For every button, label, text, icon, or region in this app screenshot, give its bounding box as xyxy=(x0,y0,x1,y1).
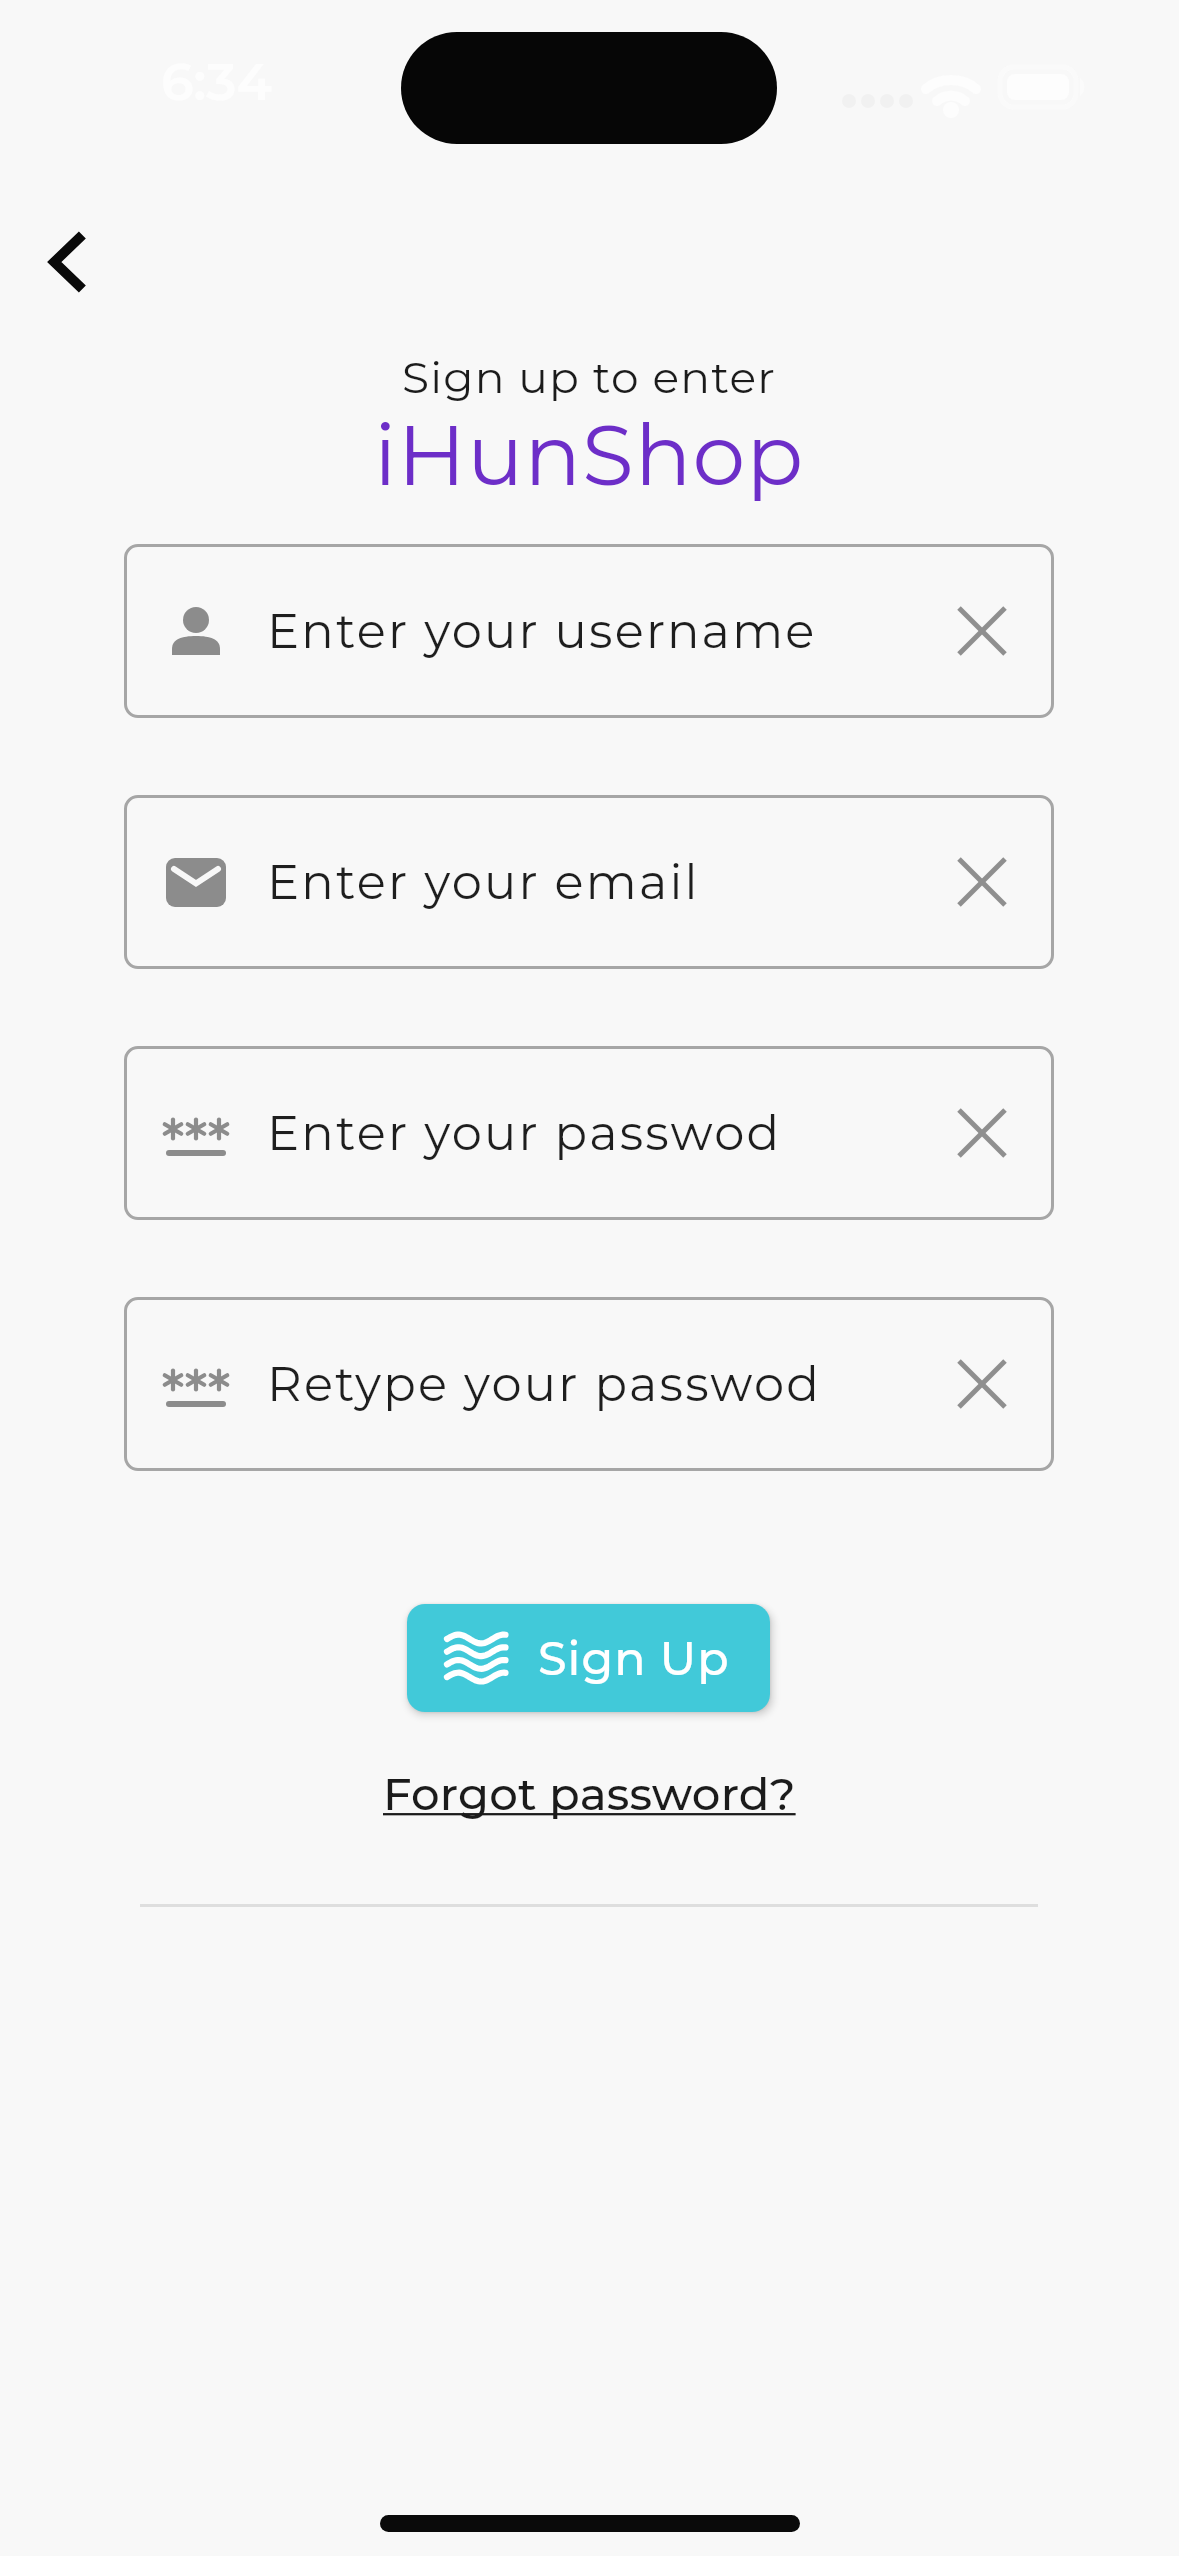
button[interactable] xyxy=(28,210,108,314)
staticText: Enter your email xyxy=(267,853,700,912)
button[interactable]: Retype your passwod xyxy=(124,1297,1054,1471)
button[interactable]: Enter your username xyxy=(124,544,1054,718)
staticText: Enter your passwod xyxy=(267,1104,782,1163)
button[interactable]: Enter your passwod xyxy=(124,1046,1054,1220)
staticText: Sign up to enter xyxy=(402,350,777,404)
button[interactable]: Forgot password? xyxy=(383,1766,796,1821)
staticText: Retype your passwod xyxy=(267,1355,822,1414)
staticText: Enter your username xyxy=(267,602,817,661)
staticText: Sign Up xyxy=(538,1630,730,1686)
staticText: Forgot password? xyxy=(383,1766,796,1821)
button[interactable]: Sign Up xyxy=(407,1604,770,1712)
staticText: iHunShop xyxy=(374,404,805,506)
button[interactable]: Enter your email xyxy=(124,795,1054,969)
